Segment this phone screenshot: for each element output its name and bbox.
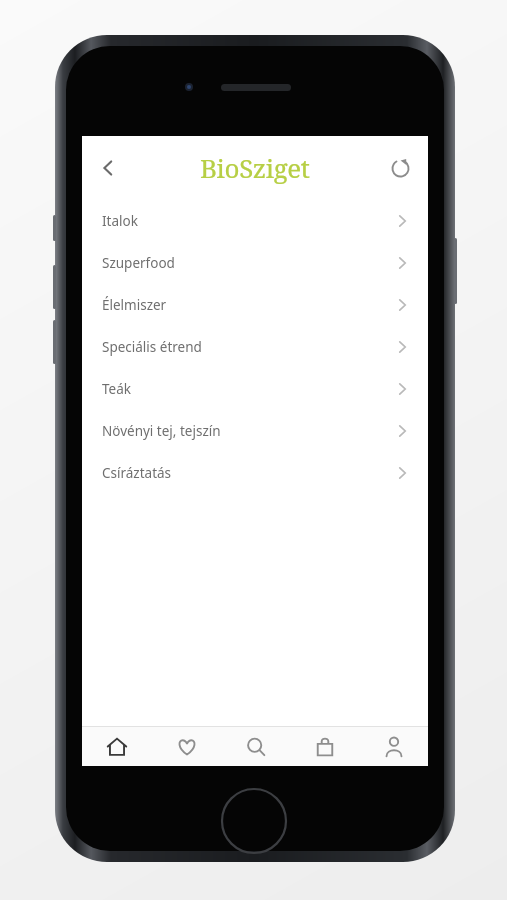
button[interactable]: Refresh <box>378 146 422 190</box>
button[interactable]: Élelmiszer <box>82 284 428 326</box>
staticText: Italok <box>102 212 394 230</box>
staticText: Teák <box>102 380 394 398</box>
button[interactable]: Search <box>221 727 290 766</box>
staticText: Speciális étrend <box>102 338 394 356</box>
button[interactable]: Favourites <box>152 727 221 766</box>
staticText: Szuperfood <box>102 254 394 272</box>
button[interactable]: Home <box>82 727 152 766</box>
button[interactable]: Csíráztatás <box>82 452 428 494</box>
button[interactable]: Back <box>86 146 130 190</box>
staticText: Csíráztatás <box>102 464 394 482</box>
button[interactable]: Növényi tej, tejszín <box>82 410 428 452</box>
button[interactable]: Cart <box>290 727 359 766</box>
staticText: BioSziget <box>200 150 310 185</box>
button[interactable]: Italok <box>82 200 428 242</box>
staticText: Növényi tej, tejszín <box>102 422 394 440</box>
button[interactable]: Szuperfood <box>82 242 428 284</box>
staticText: Élelmiszer <box>102 296 394 314</box>
button[interactable]: Speciális étrend <box>82 326 428 368</box>
button[interactable]: Account <box>359 727 428 766</box>
button[interactable]: Teák <box>82 368 428 410</box>
